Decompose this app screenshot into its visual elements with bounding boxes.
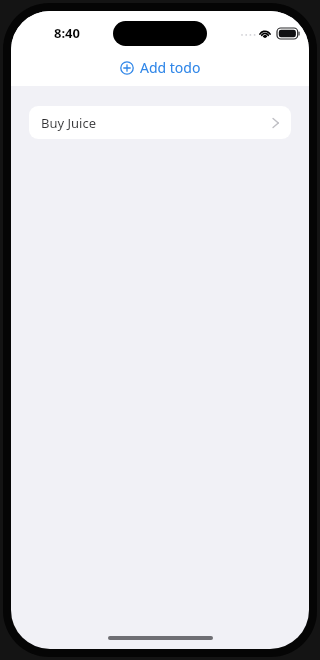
button[interactable]: Buy Juice <box>29 106 291 139</box>
staticText: Buy Juice <box>41 114 97 132</box>
staticText: Add todo <box>140 58 201 77</box>
button[interactable]: Add todo <box>114 56 207 79</box>
staticText: 8:40 <box>54 24 80 42</box>
other: Add todo <box>120 61 134 75</box>
